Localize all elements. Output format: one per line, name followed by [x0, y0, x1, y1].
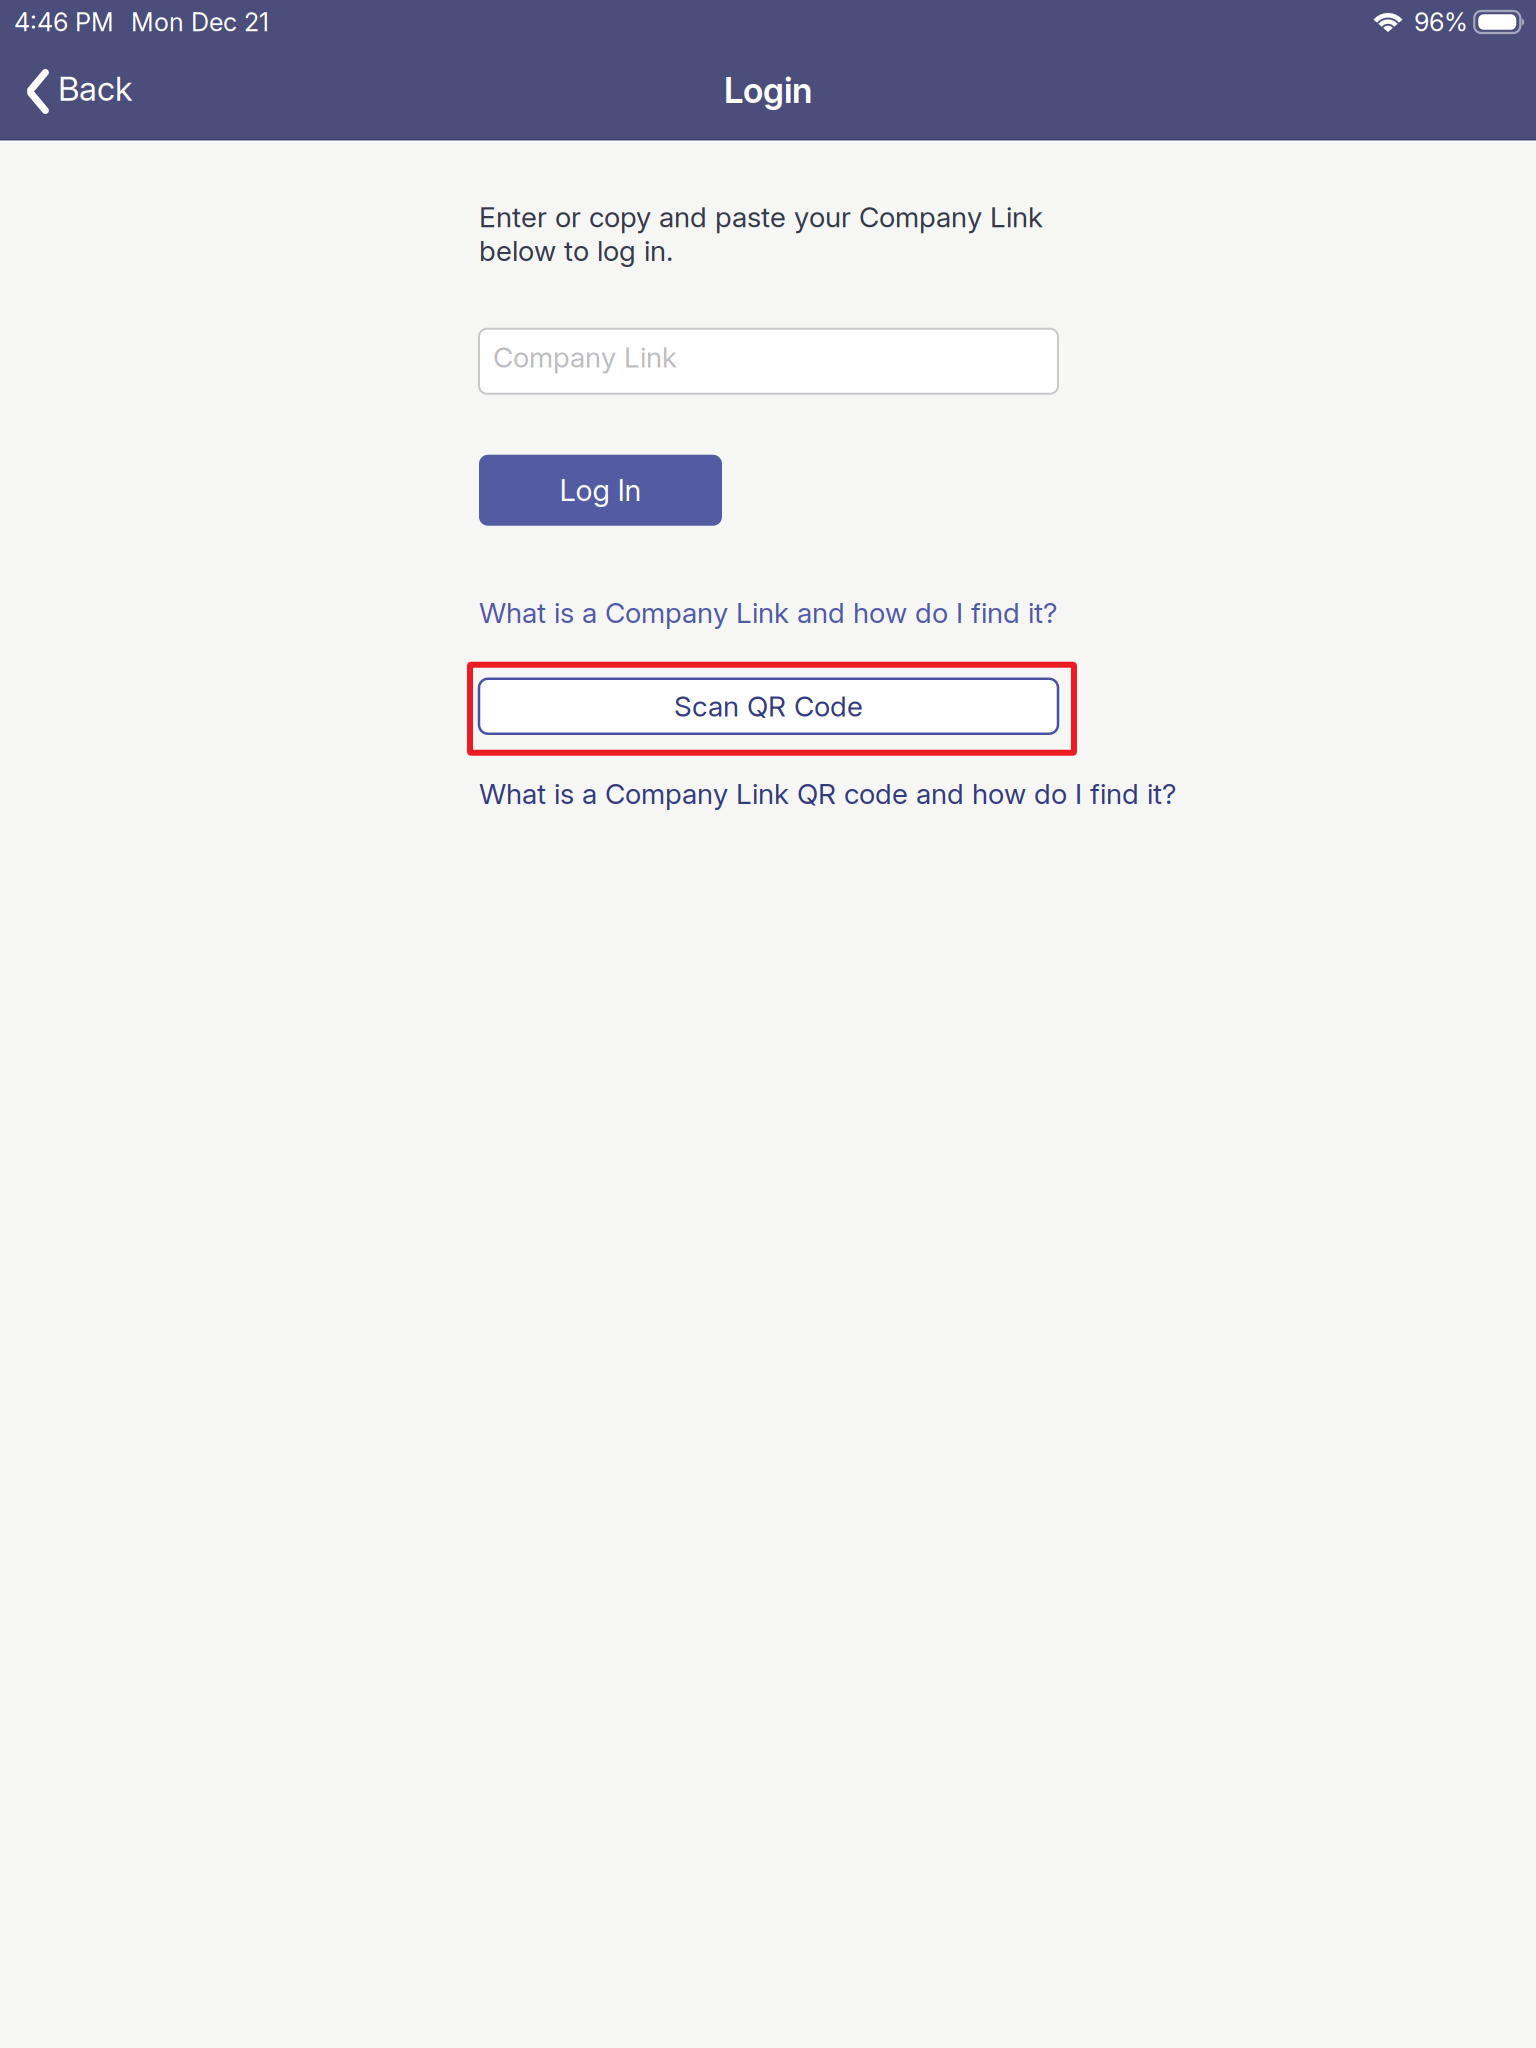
- button[interactable]: What is a Company Link and how do I find…: [479, 593, 1079, 633]
- staticText: What is a Company Link QR code and how d…: [479, 777, 1176, 811]
- staticText: Scan QR Code: [674, 689, 863, 723]
- staticText: Login: [724, 69, 812, 111]
- staticText: Back: [58, 68, 132, 109]
- staticText: Mon Dec 21: [131, 7, 269, 37]
- button[interactable]: Scan QR Code: [479, 679, 1058, 734]
- button[interactable]: Back: [0, 44, 150, 139]
- staticText: Enter or copy and paste your Company Lin…: [479, 200, 1043, 268]
- button[interactable]: Log In: [479, 455, 722, 526]
- staticText: 4:46 PM: [14, 7, 114, 37]
- button[interactable]: Company Link: [479, 329, 1058, 394]
- button[interactable]: What is a Company Link QR code and how d…: [479, 774, 1199, 814]
- staticText: 96%: [1414, 7, 1468, 37]
- staticText: Log In: [559, 472, 641, 508]
- staticText: Company Link: [493, 340, 677, 374]
- staticText: What is a Company Link and how do I find…: [479, 596, 1057, 630]
